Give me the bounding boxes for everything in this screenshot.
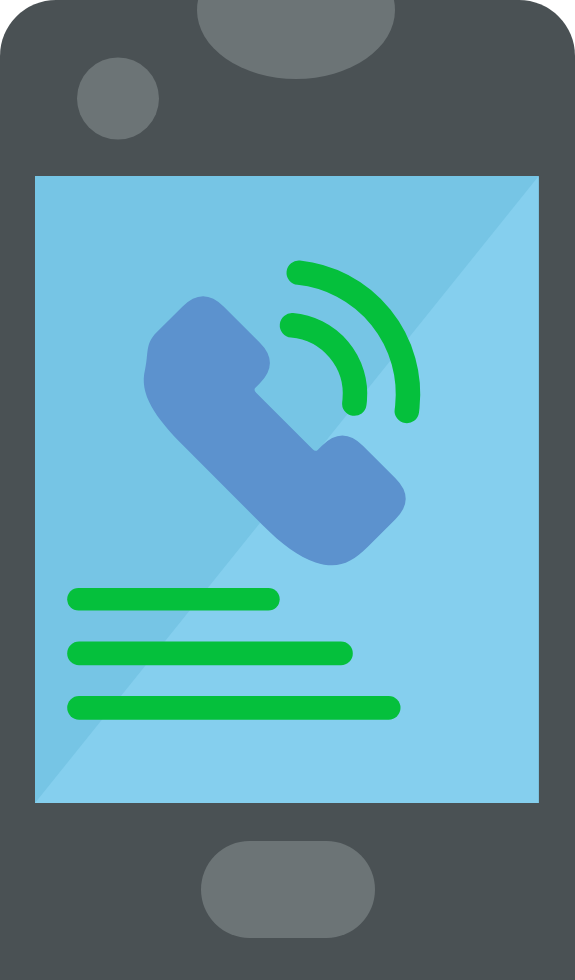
button[interactable]: Incoming call on mobile phone: [0, 0, 575, 980]
